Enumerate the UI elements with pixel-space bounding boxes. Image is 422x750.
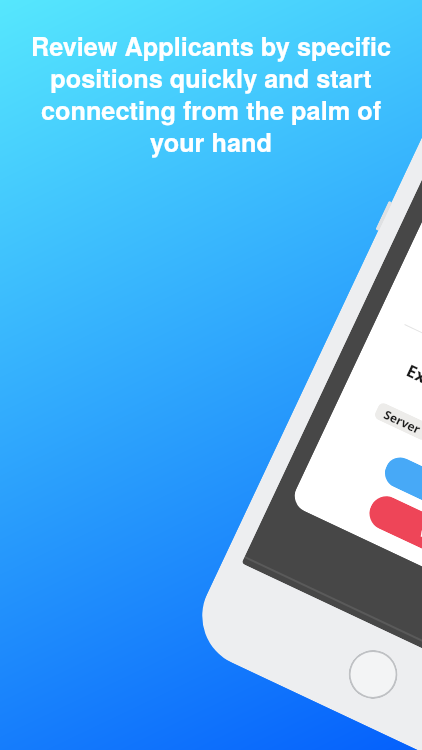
staticText: Review Applicants by specific positions … xyxy=(16,28,406,160)
button[interactable] xyxy=(340,642,406,707)
button[interactable]: WORK xyxy=(364,491,422,590)
staticText: Experience xyxy=(403,359,422,420)
button[interactable] xyxy=(380,452,422,544)
staticText: Server xyxy=(382,406,422,437)
staticText: WORK xyxy=(416,519,422,561)
